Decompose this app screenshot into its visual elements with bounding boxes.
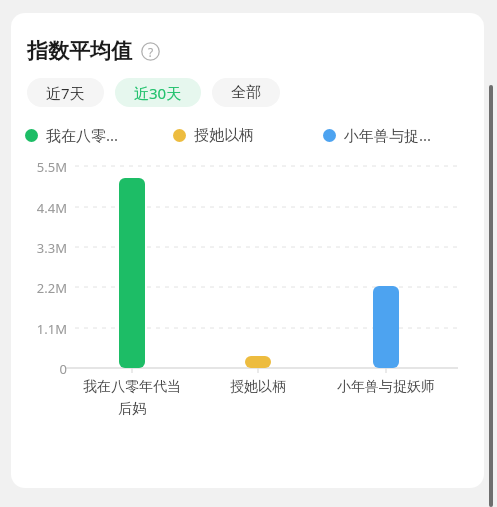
- staticText: ?: [148, 44, 154, 60]
- staticText: 1.1M: [36, 320, 67, 338]
- button[interactable]: 近7天: [27, 78, 104, 107]
- button[interactable]: 帮助说明: [141, 42, 160, 61]
- staticText: 近7天: [46, 83, 85, 103]
- staticText: 授她以柄: [194, 126, 254, 145]
- staticText: 3.3M: [36, 239, 67, 257]
- staticText: 全部: [231, 83, 261, 102]
- button[interactable]: 小年兽与捉...: [323, 125, 473, 145]
- staticText: 我在八零年代当 后妈: [83, 378, 181, 417]
- staticText: 4.4M: [36, 199, 67, 217]
- button[interactable]: 全部: [212, 78, 280, 107]
- button[interactable]: 近30天: [115, 78, 201, 107]
- staticText: 授她以柄: [230, 378, 286, 396]
- staticText: 5.5M: [36, 158, 67, 176]
- button[interactable]: 授她以柄: [173, 126, 323, 145]
- staticText: 近30天: [134, 83, 182, 103]
- staticText: 我在八零...: [46, 125, 119, 145]
- button[interactable]: 我在八零...: [25, 125, 173, 145]
- staticText: 指数平均值: [27, 38, 132, 64]
- staticText: 小年兽与捉...: [344, 125, 432, 145]
- staticText: 0: [59, 360, 67, 378]
- staticText: 小年兽与捉妖师: [337, 378, 435, 396]
- staticText: 2.2M: [36, 279, 67, 297]
